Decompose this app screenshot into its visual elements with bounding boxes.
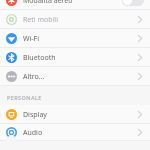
staticText: PERSONALE xyxy=(7,94,42,101)
staticText: Wi-Fi xyxy=(23,34,137,44)
staticText: Altro… xyxy=(23,72,137,82)
staticText: Display xyxy=(23,110,137,120)
button[interactable]: Modalità aereo xyxy=(0,0,150,10)
button[interactable]: Reti mobili xyxy=(0,10,150,29)
staticText: Bluetooth xyxy=(23,53,137,63)
button[interactable]: Audio xyxy=(0,124,150,141)
staticText: Modalità aereo xyxy=(23,0,122,6)
button[interactable]: Bluetooth xyxy=(0,48,150,67)
staticText: Reti mobili xyxy=(23,15,137,25)
button[interactable]: Altro… xyxy=(0,67,150,86)
button[interactable]: Modalità aereo xyxy=(122,0,144,6)
button[interactable]: Wi-Fi xyxy=(0,29,150,48)
staticText: Audio xyxy=(23,128,137,138)
button[interactable]: Display xyxy=(0,105,150,124)
